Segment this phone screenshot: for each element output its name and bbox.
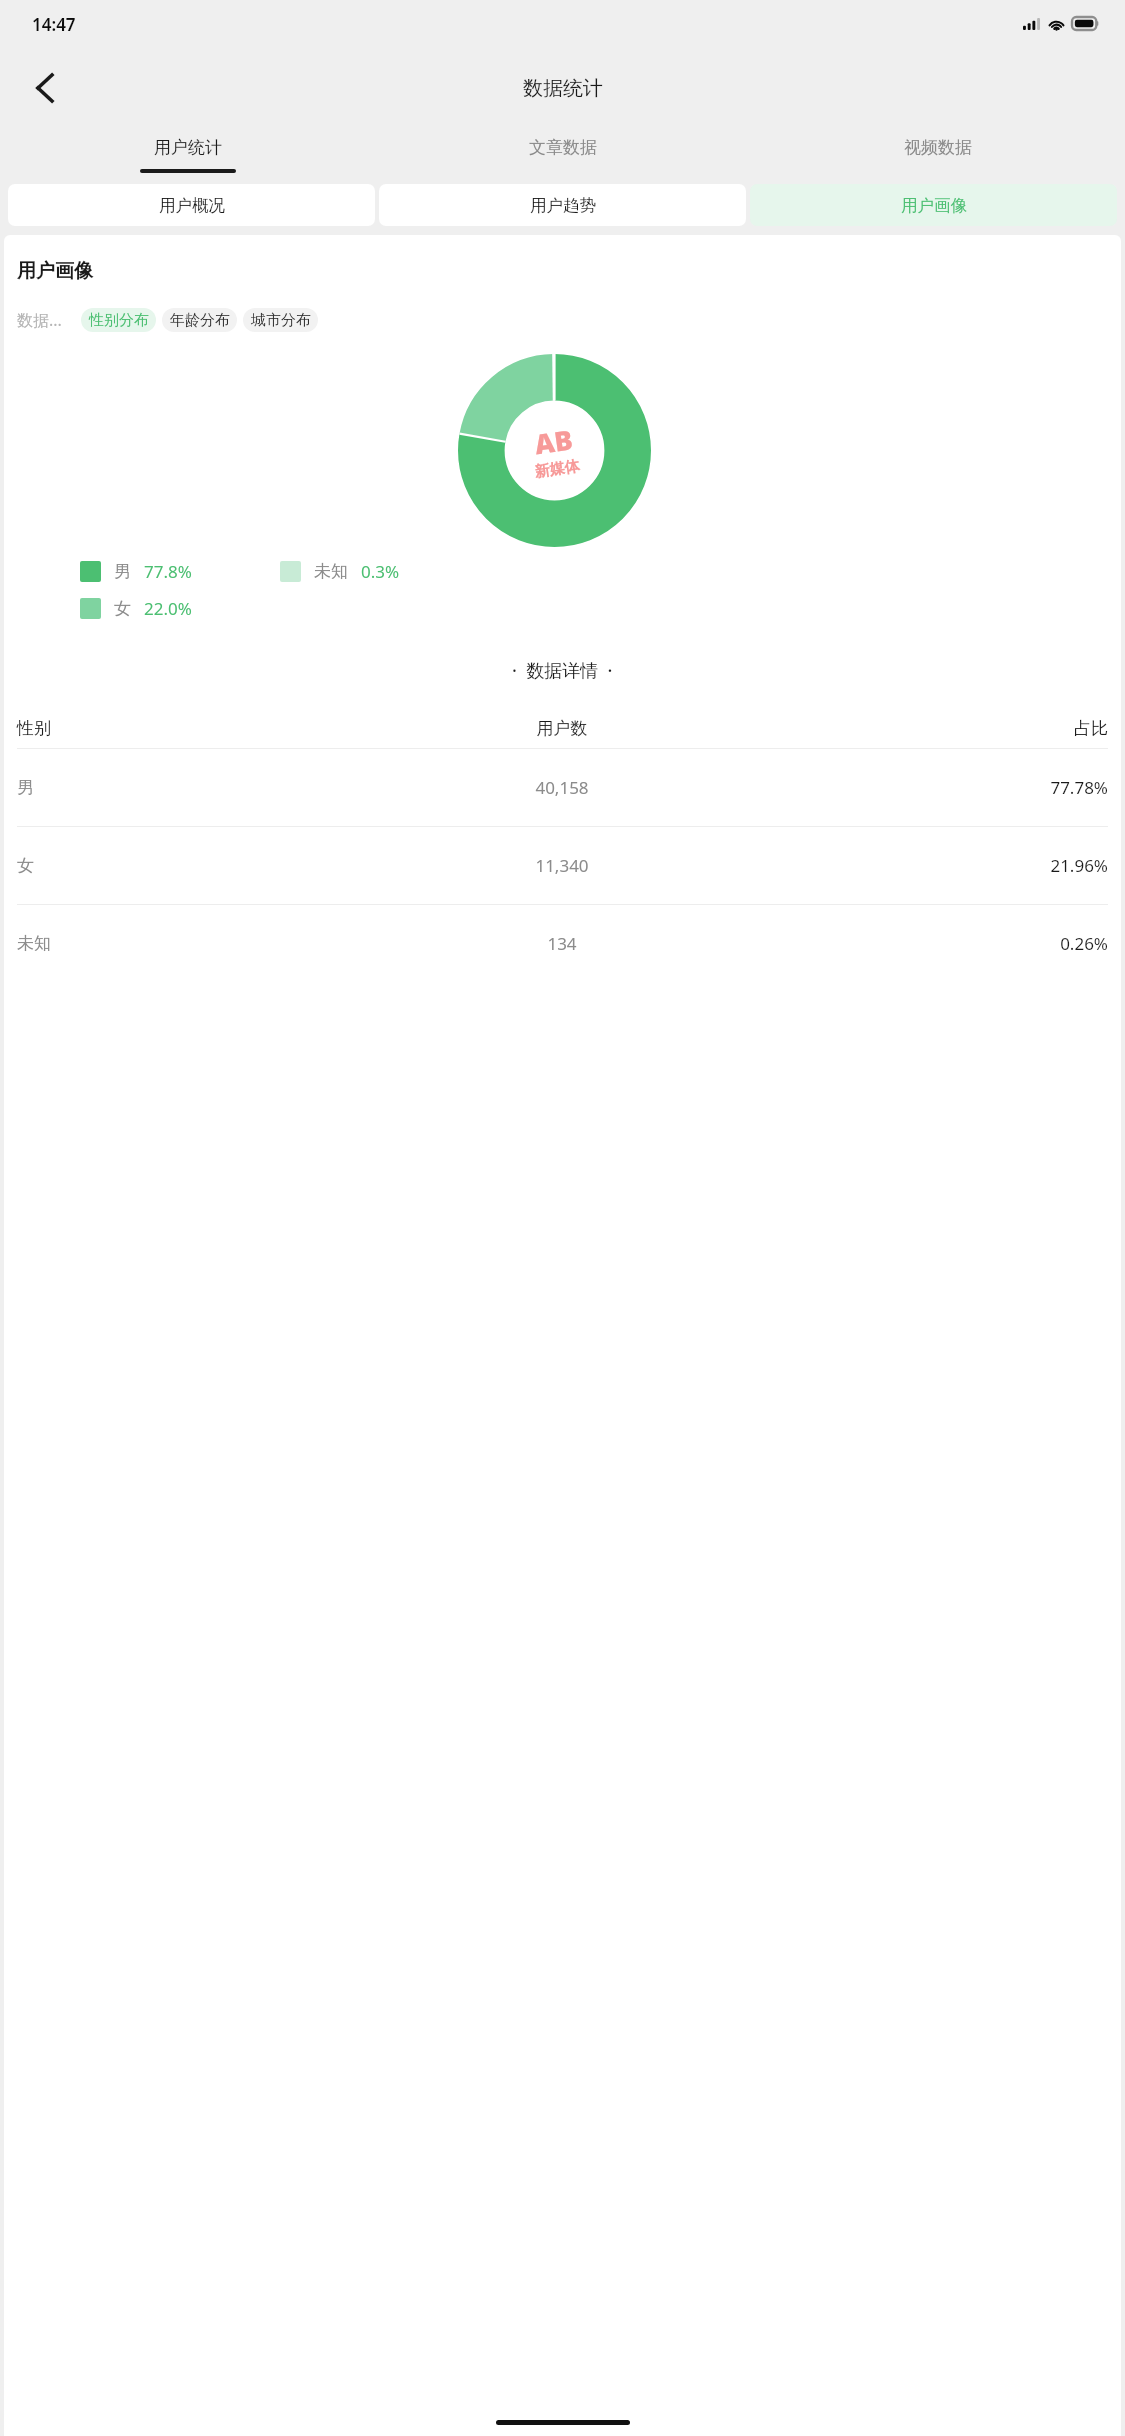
button[interactable]: 视频数据	[750, 132, 1125, 184]
staticText: 女	[114, 598, 131, 619]
staticText: 女	[17, 855, 380, 876]
button[interactable]: 用户趋势	[379, 184, 746, 226]
staticText: 年龄分布	[170, 311, 230, 330]
staticText: 未知	[314, 561, 348, 582]
staticText: 134	[380, 932, 744, 955]
staticText: 用户趋势	[530, 195, 596, 216]
staticText: 性别	[17, 718, 380, 739]
button[interactable]: 文章数据	[375, 132, 750, 184]
button[interactable]: 城市分布	[243, 308, 318, 332]
staticText: 22.0%	[144, 597, 192, 620]
button[interactable]: 用户统计	[0, 132, 375, 184]
staticText: 用户概况	[159, 195, 225, 216]
staticText: 用户画像	[17, 259, 93, 283]
staticText: 0.26%	[744, 932, 1108, 955]
staticText: 77.8%	[144, 560, 192, 583]
staticText: 用户统计	[154, 137, 222, 158]
button[interactable]: 女	[17, 827, 1108, 904]
staticText: 城市分布	[251, 311, 311, 330]
staticText: 14:47	[32, 13, 76, 36]
staticText: 77.78%	[744, 776, 1108, 799]
staticText: 数据统计	[523, 76, 603, 101]
staticText: 男	[114, 561, 131, 582]
staticText: 0.3%	[361, 560, 400, 583]
button[interactable]: 年龄分布	[162, 308, 237, 332]
button[interactable]: 用户画像	[750, 184, 1117, 226]
staticText: 数据...	[17, 309, 62, 331]
button[interactable]: 用户概况	[8, 184, 375, 226]
staticText: 21.96%	[744, 854, 1108, 877]
staticText: 占比	[744, 718, 1108, 739]
staticText: 视频数据	[904, 137, 972, 158]
button[interactable]: Back	[18, 61, 72, 115]
button[interactable]: 未知	[17, 905, 1108, 982]
staticText: AB	[532, 421, 575, 462]
staticText: 文章数据	[529, 137, 597, 158]
staticText: 新媒体	[533, 457, 581, 482]
staticText: 男	[17, 777, 380, 798]
staticText: 40,158	[380, 776, 744, 799]
staticText: · 数据详情 ·	[512, 658, 613, 683]
staticText: 用户数	[380, 718, 744, 739]
staticText: 用户画像	[901, 195, 967, 216]
staticText: 性别分布	[89, 311, 149, 330]
staticText: 未知	[17, 933, 380, 954]
staticText: 11,340	[380, 854, 744, 877]
button[interactable]: 性别分布	[81, 308, 156, 332]
button[interactable]: 男	[17, 749, 1108, 826]
